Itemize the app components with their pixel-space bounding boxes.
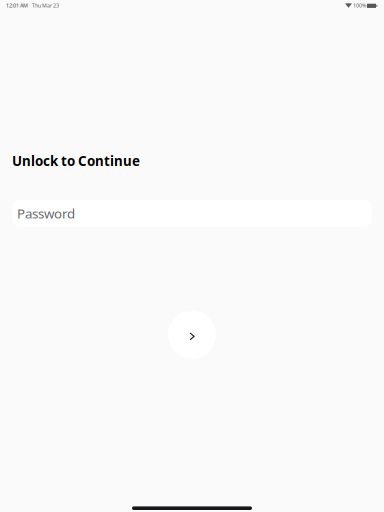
secureTextField[interactable]: Password — [12, 200, 372, 227]
staticText: Thu Mar 23 — [32, 2, 59, 9]
staticText: Password — [17, 204, 75, 222]
button[interactable]: Continue — [168, 311, 216, 359]
button[interactable]: Password — [12, 200, 372, 227]
staticText: 12:01 AM — [6, 2, 28, 9]
staticText: Unlock to Continue — [12, 152, 140, 170]
staticText: 100% — [352, 2, 367, 9]
